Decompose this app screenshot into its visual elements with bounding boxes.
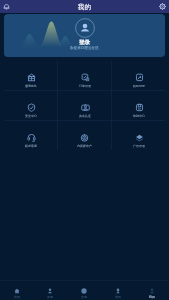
button[interactable]: 首页 [0,281,33,300]
staticText: 交易 [81,295,87,299]
button[interactable]: 收款记录 [112,61,165,90]
staticText: 我的 [149,295,155,299]
staticText: 我的 [78,3,91,11]
staticText: 资讯 [115,295,121,299]
button[interactable]: 联系客服 [4,121,57,150]
button[interactable]: 内训师申户 [58,121,111,150]
button[interactable]: 广告管理 [112,121,165,150]
button[interactable]: 我的 [135,281,169,300]
staticText: 安全中心 [25,114,37,118]
staticText: 发现 [47,295,53,299]
button[interactable]: 登录 [4,14,165,57]
button[interactable]: 资讯 [101,281,135,300]
staticText: 登录 [79,39,90,46]
button[interactable]: 帮助中心 [112,91,165,120]
button[interactable]: 订单管理 [58,61,111,90]
staticText: 帮助中心 [133,114,145,118]
staticText: 欢迎来到星云社区 [70,46,99,51]
button[interactable]: Notifications [2,2,11,11]
button[interactable]: 邀请有礼 [4,61,57,90]
button[interactable]: 实名认证 [58,91,111,120]
staticText: 邀请有礼 [25,84,37,88]
button[interactable]: 交易 [67,281,101,300]
button[interactable]: 安全中心 [4,91,57,120]
button[interactable]: Settings [158,2,167,11]
button[interactable]: 发现 [33,281,67,300]
staticText: 收款记录 [133,84,145,88]
staticText: 订单管理 [79,84,91,88]
staticText: 内训师申户 [77,144,92,148]
staticText: 联系客服 [25,144,37,148]
staticText: 实名认证 [79,114,91,118]
staticText: 广告管理 [133,144,145,148]
staticText: 首页 [14,295,20,299]
